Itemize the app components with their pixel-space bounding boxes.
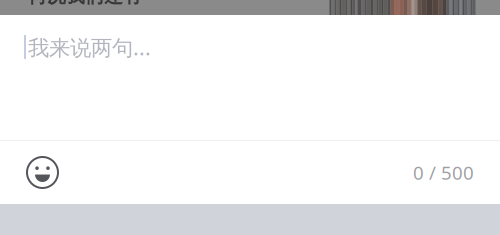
staticText: 我来说两句... [28, 33, 151, 61]
staticText: 新浪娱乐 2小时前 [28, 9, 100, 22]
staticText: 何况我们还有 [28, 0, 142, 7]
staticText: 0 / 500 [413, 160, 474, 185]
button[interactable]: Emoji [0, 143, 68, 202]
